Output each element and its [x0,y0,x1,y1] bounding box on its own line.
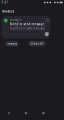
staticText: Insufficient system storage [9,27,45,30]
staticText: Failed to send message [9,22,44,26]
button[interactable]: History [5,41,19,46]
button[interactable]: Back [0,112,17,114]
staticText: Blocked [2,10,14,13]
button[interactable]: Expand notification [1,16,49,22]
button[interactable]: Home [17,112,35,114]
button[interactable]: Clear all [28,41,46,46]
staticText: History [7,42,16,45]
staticText: Messages [9,18,21,21]
button[interactable]: Spam protection [1,16,49,36]
staticText: Clear all [31,42,44,45]
button[interactable]: Recent apps [35,112,52,114]
staticText: 9:41 [1,1,8,4]
